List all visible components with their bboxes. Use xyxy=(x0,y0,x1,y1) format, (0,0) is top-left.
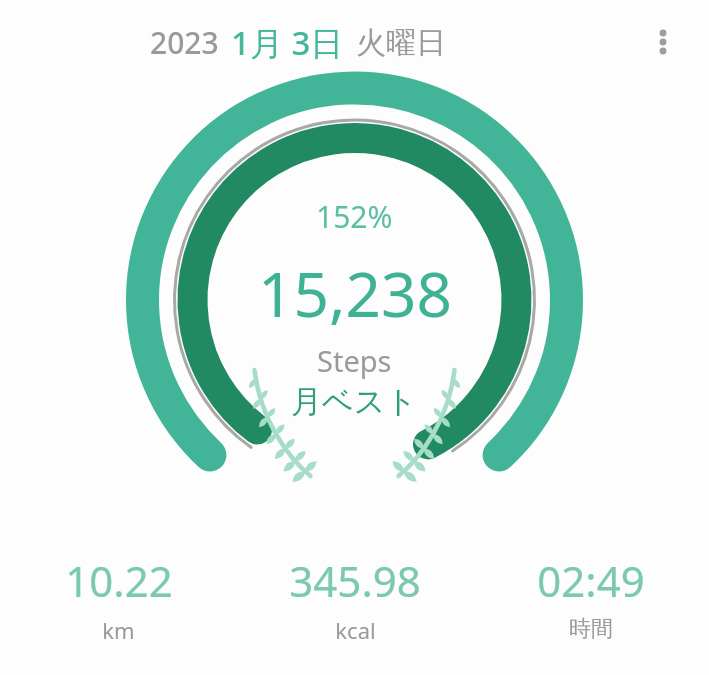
staticText: 月ベスト xyxy=(291,382,418,421)
staticText: 02:49 xyxy=(537,552,645,609)
staticText: km xyxy=(102,615,135,645)
button[interactable]: 02:49 xyxy=(473,548,709,647)
staticText: Steps xyxy=(317,341,392,380)
button[interactable]: 2023 xyxy=(0,20,635,65)
button[interactable]: More options xyxy=(635,14,691,70)
button[interactable]: 345.98 xyxy=(237,548,473,649)
staticText: 15,238 xyxy=(258,251,452,335)
staticText: 152% xyxy=(316,196,393,237)
staticText: 2023 xyxy=(150,22,219,63)
staticText: 10.22 xyxy=(65,552,173,609)
staticText: 火曜日 xyxy=(356,24,446,62)
button[interactable]: 10.22 xyxy=(0,548,237,649)
staticText: 345.98 xyxy=(289,552,421,609)
staticText: 時間 xyxy=(569,615,613,643)
staticText: 1月 3日 xyxy=(231,20,344,65)
staticText: kcal xyxy=(335,615,376,645)
